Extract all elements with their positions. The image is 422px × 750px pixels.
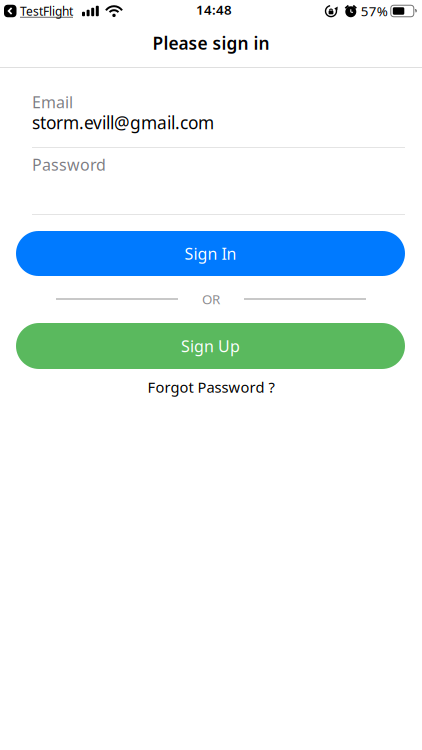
staticText: 14:48 [196,1,232,18]
button[interactable]: Sign In [0,231,422,276]
staticText: OR [202,290,220,308]
staticText: 57% [361,2,388,20]
button[interactable]: Sign Up [0,323,422,369]
staticText: storm.evill@gmail.com [32,111,214,134]
button[interactable]: Forgot Password ? [147,379,274,395]
staticText: Sign Up [181,335,240,357]
staticText: Sign In [184,243,236,264]
button[interactable]: Password [0,148,422,215]
staticText: Email [32,91,73,113]
button[interactable]: Email [0,68,422,148]
staticText: Forgot Password ? [147,377,274,397]
staticText: Password [32,154,106,175]
staticText: Please sign in [152,31,269,54]
button[interactable]: Back to TestFlight [4,3,73,19]
staticText: TestFlight [20,3,73,19]
